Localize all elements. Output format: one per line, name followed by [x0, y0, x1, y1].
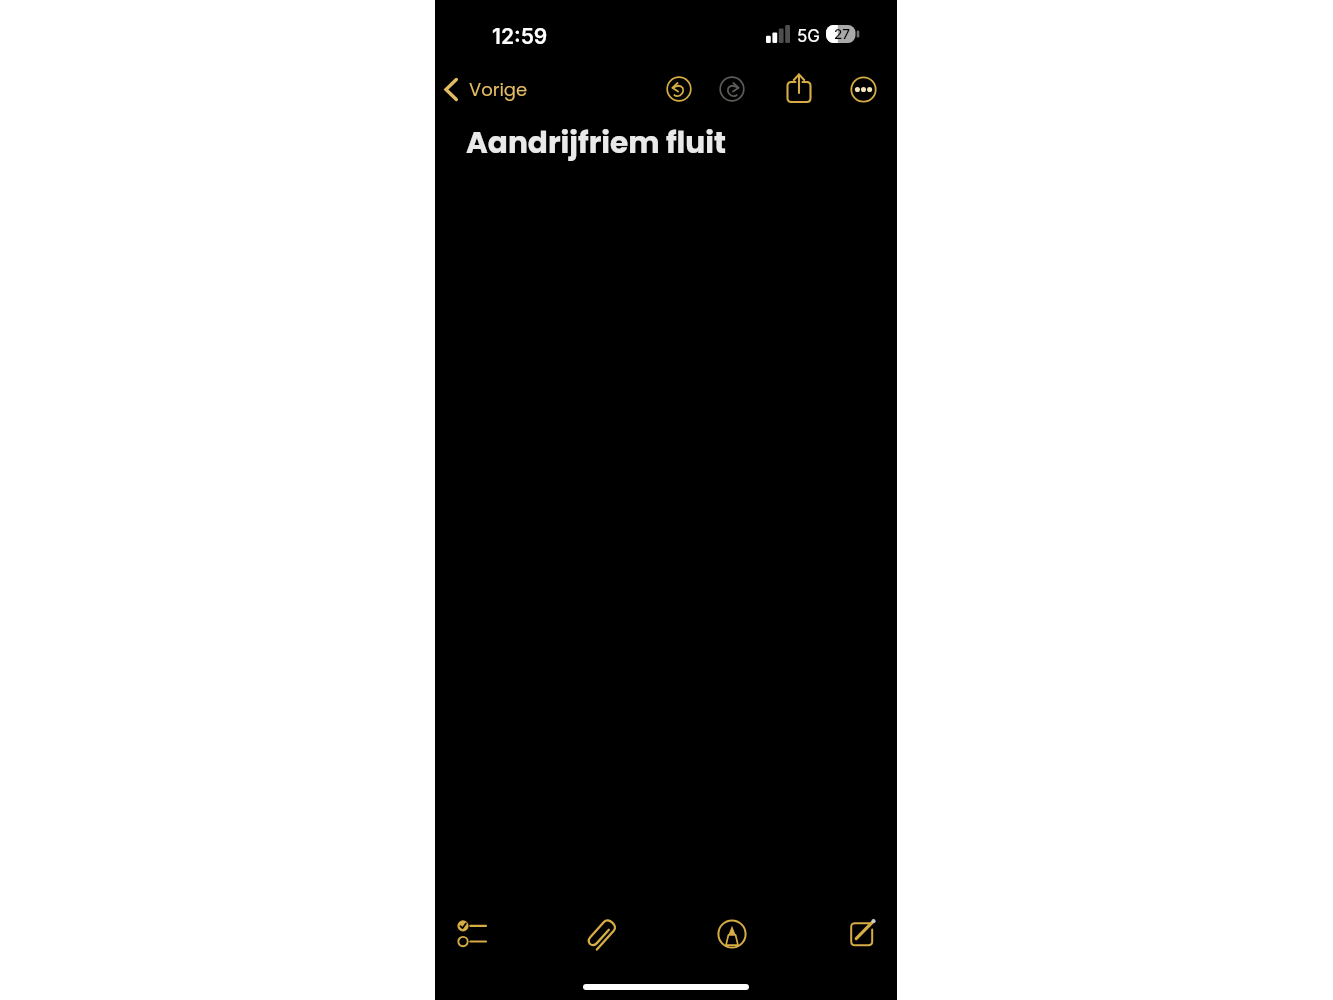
- button[interactable]: Attach: [581, 913, 623, 955]
- staticText: Aandrijfriem fluit: [466, 122, 727, 163]
- button[interactable]: Vorige: [437, 75, 538, 104]
- button[interactable]: Checklist: [450, 913, 492, 955]
- button[interactable]: New note: [841, 913, 883, 955]
- staticText: Vorige: [469, 77, 528, 102]
- staticText: 12:59: [492, 24, 548, 49]
- staticText: 5G: [797, 26, 821, 47]
- button[interactable]: Redo: [715, 72, 749, 106]
- button[interactable]: Undo: [662, 72, 696, 106]
- button[interactable]: Share: [782, 71, 816, 105]
- button[interactable]: More options: [846, 72, 880, 106]
- staticText: 27: [834, 26, 851, 42]
- button[interactable]: Markup: [711, 913, 753, 955]
